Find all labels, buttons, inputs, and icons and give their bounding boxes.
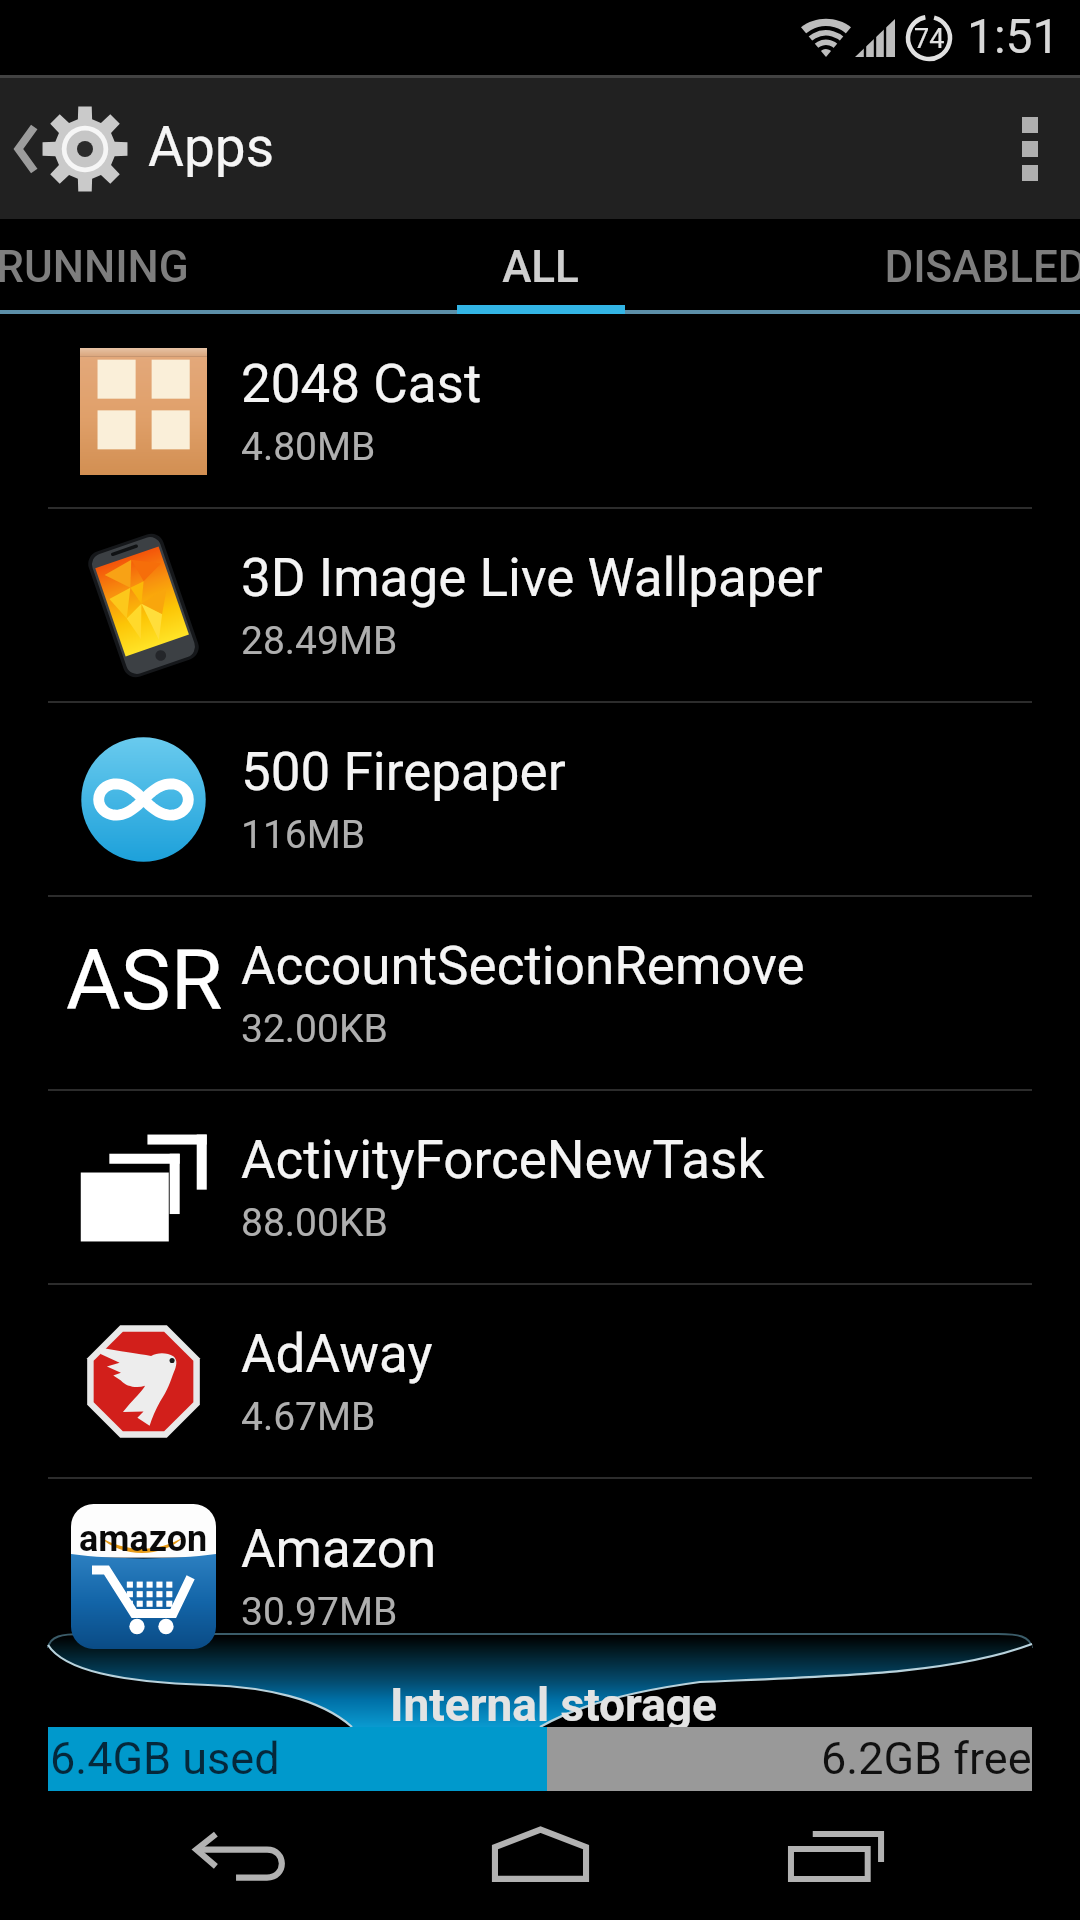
staticText: 116MB [241,812,366,858]
staticText: AccountSectionRemove [241,935,805,997]
staticText: 4.67MB [241,1394,376,1440]
staticText: RUNNING [0,241,189,293]
staticText: 6.4GB used [50,1732,280,1785]
staticText: DISABLED [884,241,1080,293]
staticText: 3D Image Live Wallpaper [241,547,823,609]
button[interactable]: amazon [0,1479,1080,1673]
button[interactable]: 500 Firepaper [0,703,1080,895]
staticText: ActivityForceNewTask [241,1129,765,1191]
staticText: 4.80MB [241,424,376,470]
staticText: 1:51 [967,8,1060,64]
button[interactable]: 3D Image Live Wallpaper [0,509,1080,701]
button[interactable]: ASR [0,897,1080,1089]
staticText: 74 [914,23,945,55]
button[interactable]: DISABLED [785,219,1080,315]
staticText: Amazon [241,1518,437,1580]
button[interactable]: AdAway [0,1285,1080,1477]
button[interactable]: Back [90,1791,390,1920]
button[interactable]: 2048 Cast [0,315,1080,507]
button[interactable]: Home [390,1791,690,1920]
staticText: 30.97MB [241,1589,398,1635]
staticText: Internal storage [390,1678,717,1732]
staticText: amazon [79,1518,208,1560]
staticText: 2048 Cast [241,353,482,415]
staticText: AdAway [241,1323,433,1385]
button[interactable]: Apps [0,78,287,219]
button[interactable]: More options [980,78,1080,219]
staticText: 32.00KB [241,1006,388,1052]
staticText: Apps [148,115,275,179]
button[interactable]: Recent apps [687,1791,987,1920]
staticText: ASR [66,931,223,1029]
staticText: ALL [502,241,579,293]
staticText: 88.00KB [241,1200,388,1246]
staticText: 6.2GB free [821,1732,1032,1785]
button[interactable]: ALL [340,219,740,315]
staticText: 500 Firepaper [241,741,566,803]
button[interactable]: ActivityForceNewTask [0,1091,1080,1283]
staticText: 28.49MB [241,618,398,664]
button[interactable]: RUNNING [0,219,292,315]
